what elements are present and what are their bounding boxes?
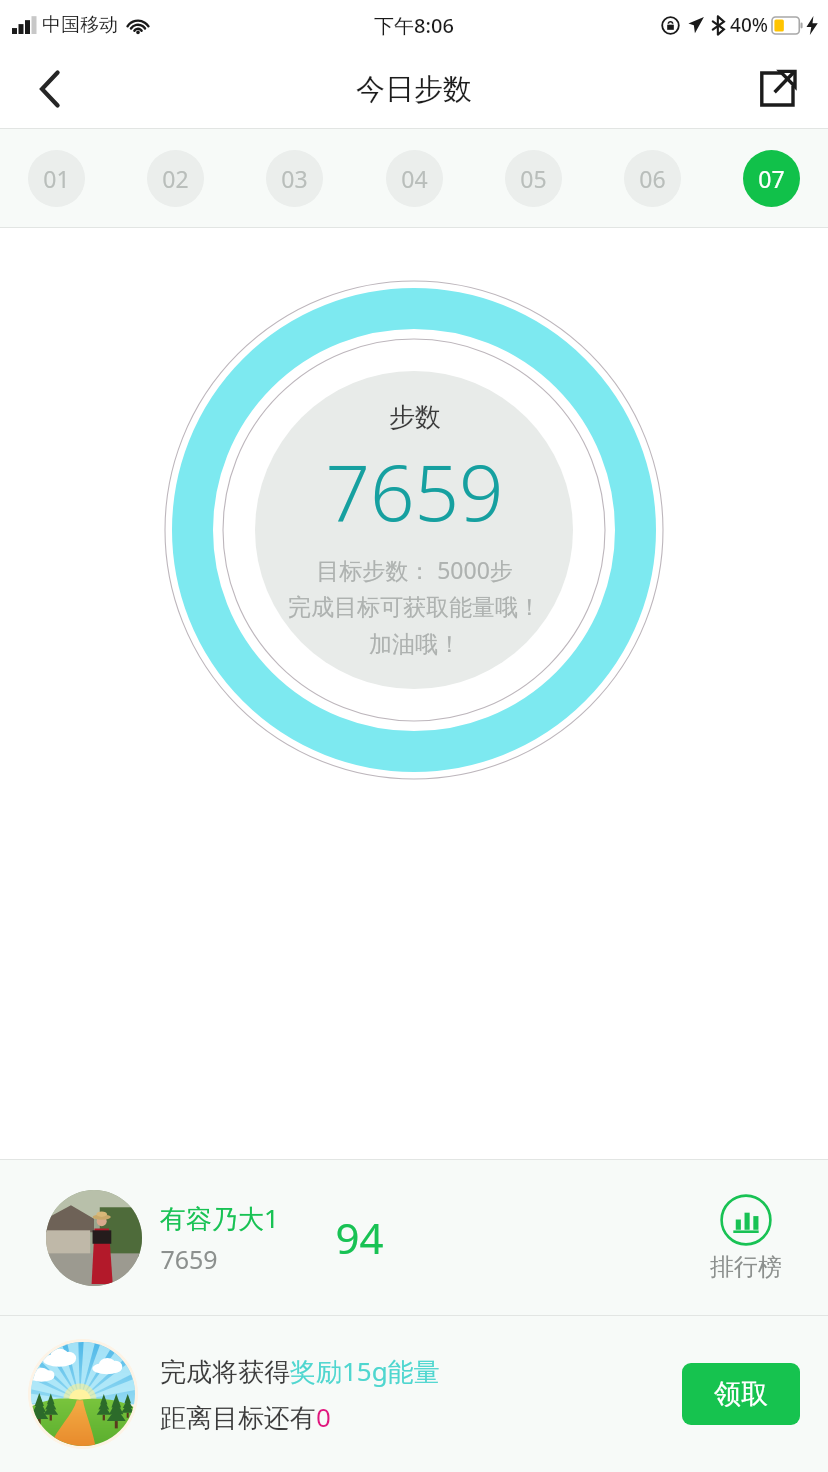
staticText: 步数: [389, 401, 441, 434]
staticText: 7659: [160, 1242, 218, 1276]
button[interactable]: 排行榜: [710, 1194, 782, 1282]
button[interactable]: 01: [28, 150, 85, 207]
button[interactable]: 02: [147, 150, 204, 207]
staticText: 40%: [730, 12, 768, 38]
staticText: 有容乃大1: [160, 1200, 279, 1236]
button[interactable]: 04: [386, 150, 443, 207]
staticText: 06: [639, 163, 666, 194]
button[interactable]: 07: [743, 150, 800, 207]
staticText: 01: [43, 163, 70, 194]
button[interactable]: Share: [746, 58, 808, 120]
staticText: 94: [335, 1209, 384, 1266]
staticText: 07: [758, 163, 785, 194]
button[interactable]: Back: [20, 59, 80, 119]
button[interactable]: 领取: [682, 1363, 800, 1425]
staticText: 7659: [325, 438, 504, 544]
staticText: 目标步数： 5000步: [316, 554, 513, 585]
staticText: 下午8:06: [374, 12, 454, 39]
staticText: 02: [162, 163, 189, 194]
staticText: 04: [401, 163, 428, 194]
button[interactable]: 有容乃大1: [0, 1160, 828, 1315]
button[interactable]: 06: [624, 150, 681, 207]
button[interactable]: 03: [266, 150, 323, 207]
staticText: 05: [520, 163, 547, 194]
staticText: 03: [281, 163, 308, 194]
staticText: 完成目标可获取能量哦！: [288, 593, 541, 622]
staticText: 加油哦！: [369, 630, 461, 659]
staticText: 完成将获得奖励15g能量: [160, 1353, 440, 1389]
staticText: 距离目标还有0: [160, 1399, 331, 1435]
button[interactable]: 05: [505, 150, 562, 207]
staticText: 排行榜: [710, 1252, 782, 1282]
staticText: 今日步数: [356, 71, 472, 108]
staticText: 领取: [714, 1377, 768, 1411]
staticText: 中国移动: [42, 13, 118, 37]
